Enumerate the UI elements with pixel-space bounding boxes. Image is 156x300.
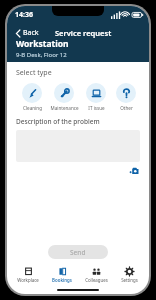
button[interactable]: Cleaning xyxy=(16,83,48,111)
staticText: Bookings xyxy=(52,277,72,283)
staticText: Cleaning xyxy=(23,105,42,111)
button[interactable]: IT issue xyxy=(80,83,112,111)
button[interactable]: Other xyxy=(112,83,140,111)
staticText: Select type xyxy=(16,68,52,78)
button[interactable]: Workplace xyxy=(11,267,45,283)
staticText: Workstation xyxy=(16,38,69,50)
staticText: Other xyxy=(120,105,133,111)
staticText: Maintenance xyxy=(50,105,79,111)
staticText: IT issue xyxy=(88,105,105,111)
button[interactable]: Bookings xyxy=(45,267,79,283)
button[interactable]: Send xyxy=(48,245,108,259)
staticText: 14:36 xyxy=(15,10,33,20)
staticText: 9-B Desk, Floor 12 xyxy=(16,51,67,59)
button[interactable]: Maintenance xyxy=(48,83,80,111)
staticText: Settings xyxy=(121,277,138,283)
staticText: Description of the problem xyxy=(16,117,100,126)
staticText: Colleagues xyxy=(85,277,108,283)
button[interactable]: Settings xyxy=(113,267,145,283)
staticText: Back xyxy=(23,28,39,38)
button[interactable]: Add photo xyxy=(128,165,140,177)
staticText: Workplace xyxy=(17,277,39,283)
staticText: Send xyxy=(70,248,86,257)
button[interactable]: Colleagues xyxy=(79,267,113,283)
staticText: Service request xyxy=(55,28,112,38)
button[interactable]: Back xyxy=(13,27,41,39)
